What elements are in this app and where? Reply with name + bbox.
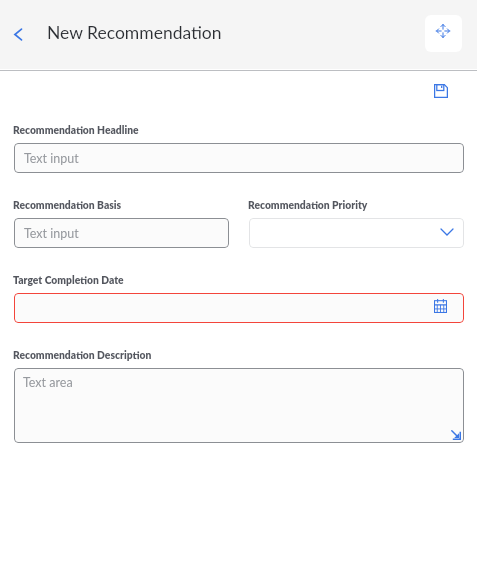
- staticText: Text input: [24, 151, 79, 166]
- staticText: Recommendation Priority: [248, 199, 368, 211]
- button[interactable]: Pick date: [433, 299, 447, 313]
- button[interactable]: Text input: [14, 143, 464, 173]
- button[interactable]: Text area: [14, 368, 464, 443]
- button[interactable]: Save: [427, 77, 455, 105]
- button[interactable]: Pick date: [14, 293, 464, 323]
- staticText: New Recommendation: [47, 22, 222, 43]
- button[interactable]: Back: [0, 17, 36, 53]
- staticText: Recommendation Headline: [13, 124, 139, 136]
- staticText: Text input: [24, 226, 79, 241]
- staticText: Recommendation Basis: [13, 199, 122, 211]
- staticText: Text area: [23, 375, 73, 390]
- staticText: Recommendation Description: [13, 349, 152, 361]
- button[interactable]: Recommendation Priority dropdown: [249, 218, 464, 248]
- button[interactable]: Text input: [14, 218, 229, 248]
- staticText: Target Completion Date: [13, 274, 124, 286]
- button[interactable]: Move: [425, 15, 462, 52]
